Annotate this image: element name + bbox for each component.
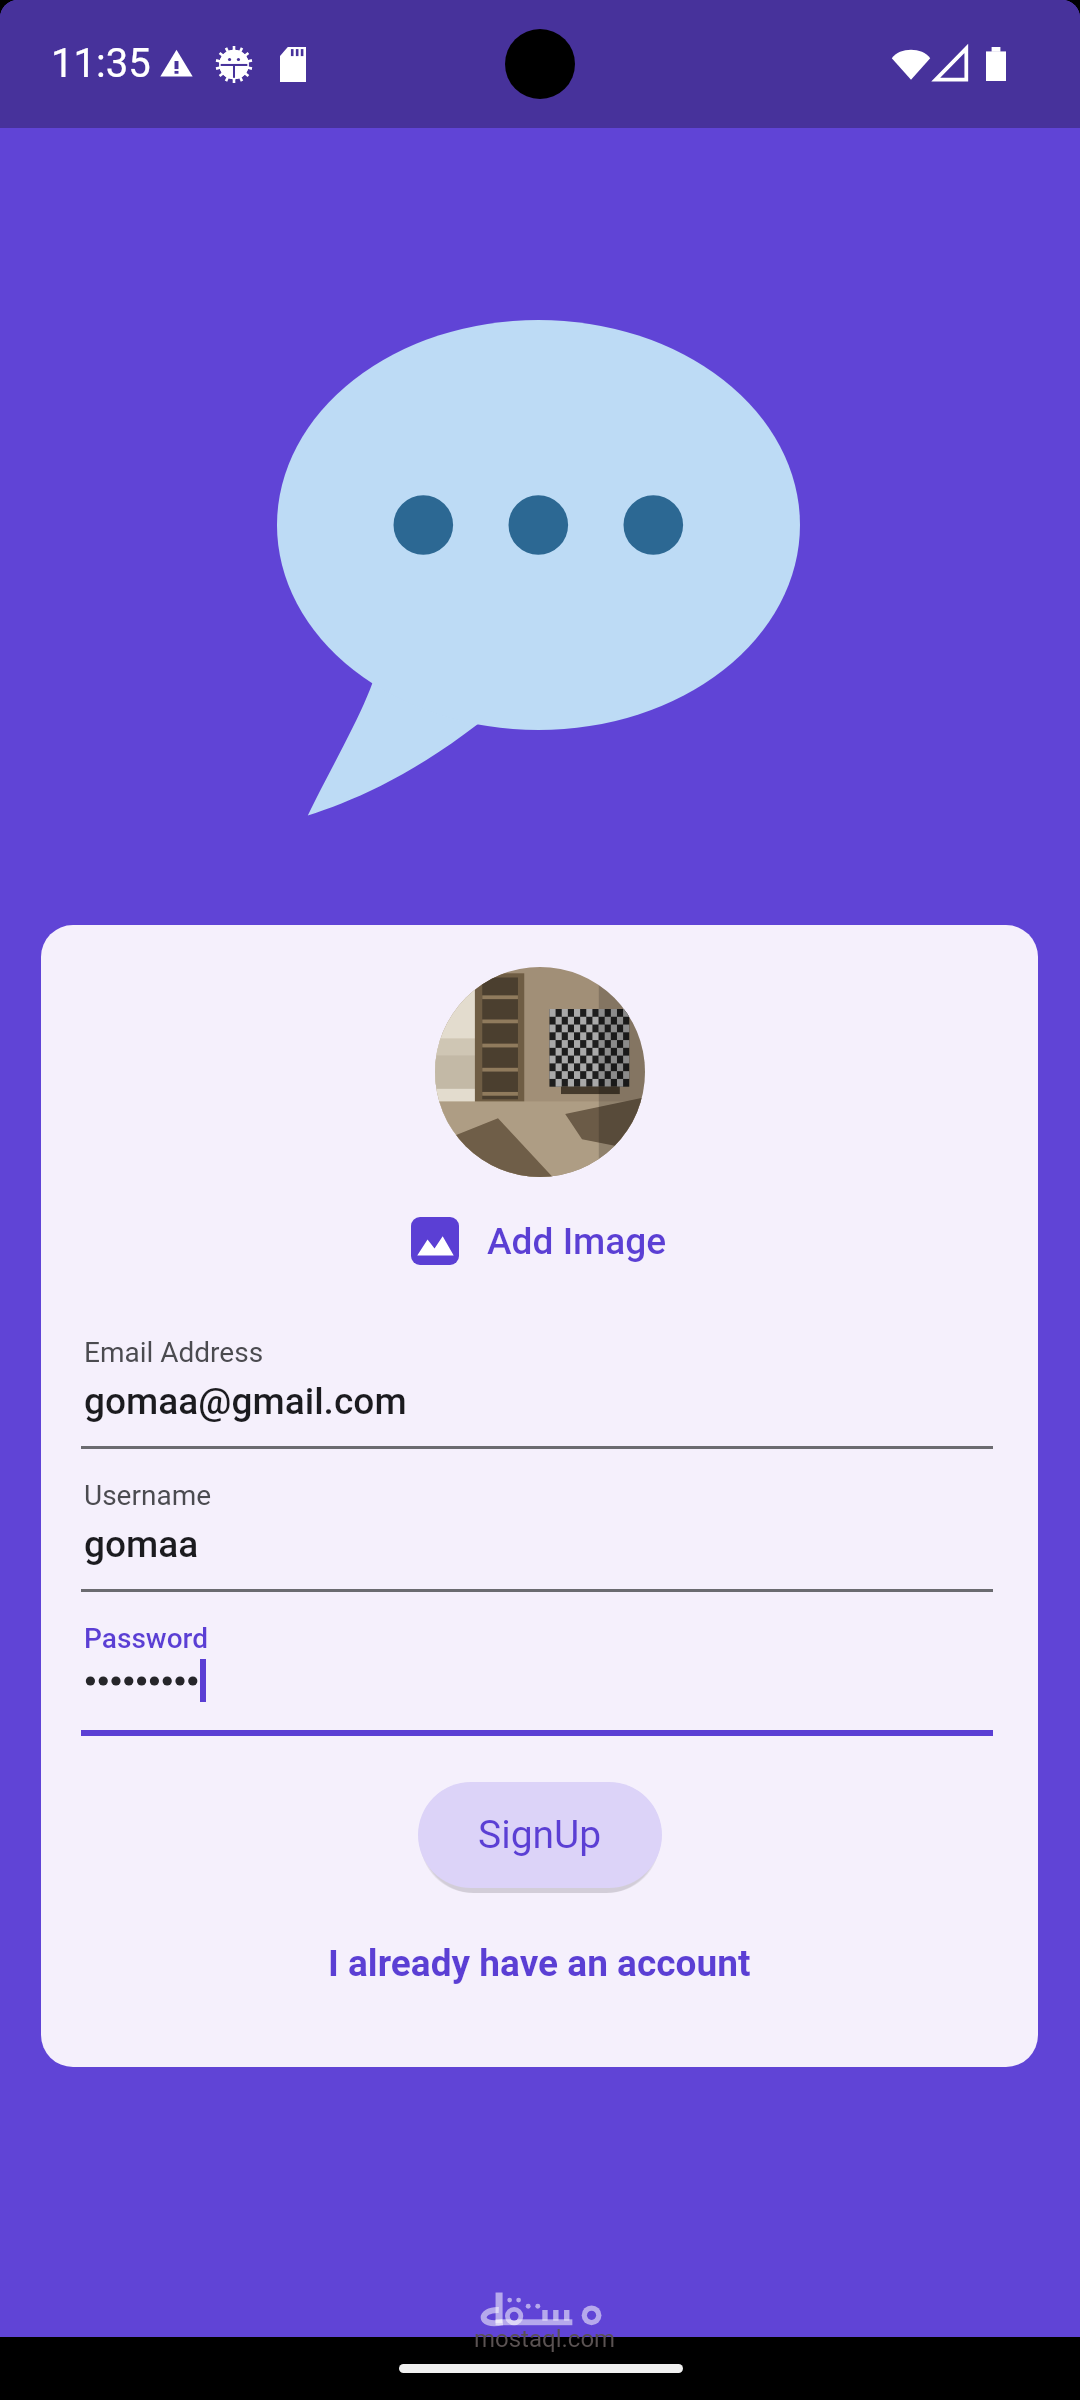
button[interactable]: SignUp: [418, 1782, 662, 1888]
staticText: 11:35: [51, 40, 151, 87]
button[interactable]: I already have an account: [328, 1942, 751, 1985]
staticText: SignUp: [478, 1812, 602, 1858]
staticText: Add Image: [487, 1220, 667, 1263]
button[interactable]: Username: [81, 1473, 993, 1598]
staticText: Username: [84, 1479, 212, 1512]
staticText: Password: [84, 1622, 209, 1655]
button[interactable]: Add Image: [411, 1209, 667, 1273]
button[interactable]: Email Address: [81, 1330, 993, 1455]
button[interactable]: Profile image: [435, 967, 645, 1177]
button[interactable]: Password: [81, 1616, 993, 1741]
staticText: mostaql.com: [474, 2325, 616, 2353]
staticText: gomaa: [84, 1523, 199, 1566]
staticText: Email Address: [84, 1336, 264, 1369]
staticText: gomaa@gmail.com: [84, 1380, 407, 1423]
